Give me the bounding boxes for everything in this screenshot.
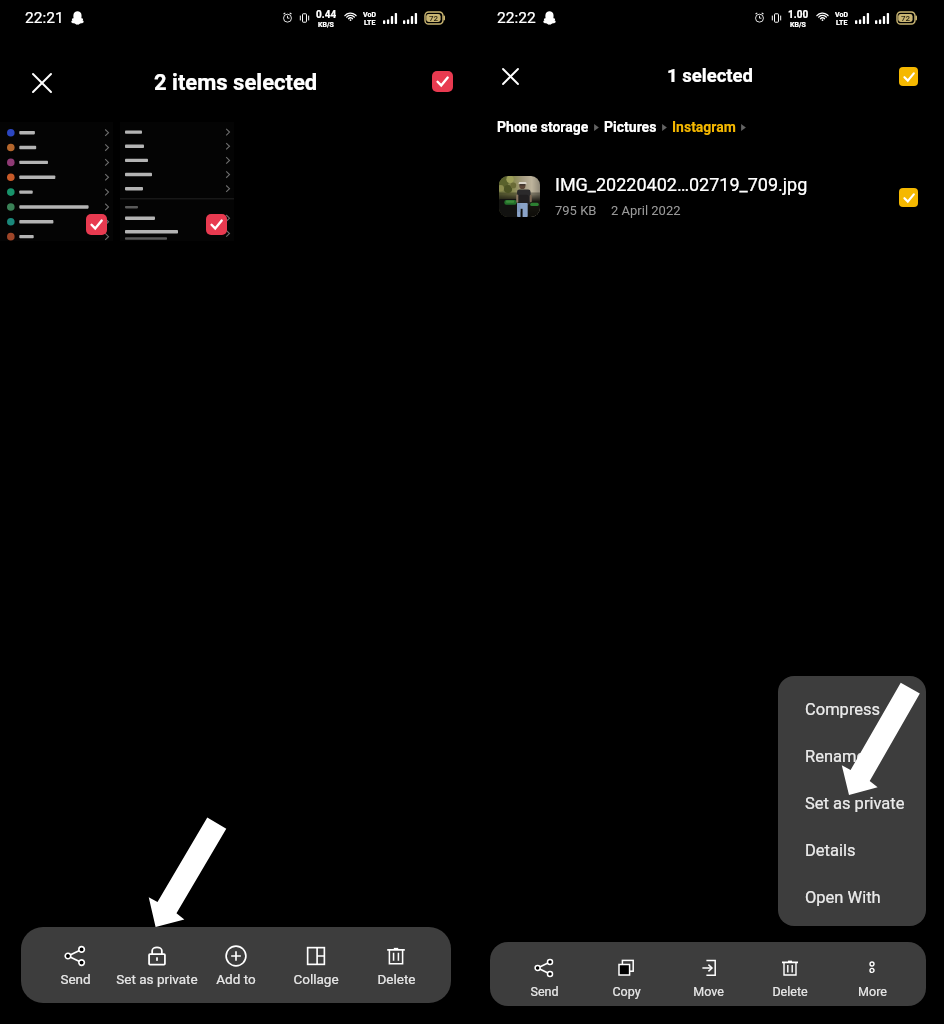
staticText: Send — [60, 971, 91, 987]
button[interactable]: Details — [778, 827, 926, 874]
staticText: Open With — [805, 888, 881, 907]
button[interactable]: Delete — [346, 927, 446, 1003]
button[interactable]: Set as private — [778, 780, 926, 827]
staticText: Set as private — [805, 794, 905, 813]
staticText: Move — [693, 984, 724, 999]
staticText: 2 April 2022 — [611, 203, 681, 218]
button[interactable]: Phone storage — [497, 119, 589, 135]
button[interactable] — [120, 122, 234, 241]
staticText: KB/S — [318, 21, 334, 29]
button[interactable]: More — [822, 942, 922, 1006]
button[interactable]: Send — [25, 927, 125, 1003]
button[interactable]: Selected — [206, 214, 227, 235]
staticText: 0.44 — [316, 9, 337, 21]
button[interactable]: IMG_20220402…02719_709.jpg — [472, 168, 944, 225]
staticText: Compress — [805, 700, 881, 719]
button[interactable]: Collage — [266, 927, 366, 1003]
button[interactable]: Add to — [186, 927, 286, 1003]
staticText: VoD — [363, 11, 376, 19]
staticText: 72 — [901, 14, 911, 23]
staticText: LTE — [364, 19, 376, 27]
button[interactable]: Instagram — [672, 119, 736, 135]
staticText: 72 — [429, 14, 439, 23]
staticText: Delete — [377, 971, 416, 987]
staticText: KB/S — [790, 21, 806, 29]
button[interactable]: Selected — [86, 214, 107, 235]
button[interactable]: Select all — [432, 71, 453, 92]
staticText: Copy — [612, 984, 641, 999]
staticText: Set as private — [116, 971, 198, 987]
button[interactable]: Compress — [778, 686, 926, 733]
button[interactable]: Close — [492, 58, 528, 94]
staticText: Add to — [216, 971, 256, 987]
button[interactable]: Rename — [778, 733, 926, 780]
staticText: Rename — [805, 747, 866, 766]
staticText: 22:21 — [25, 9, 64, 27]
button[interactable]: Delete — [740, 942, 840, 1006]
button[interactable]: Select all — [899, 67, 918, 86]
button[interactable]: Copy — [576, 942, 676, 1006]
staticText: 22:22 — [497, 9, 536, 27]
staticText: Delete — [772, 984, 808, 999]
staticText: 2 items selected — [154, 70, 318, 96]
button[interactable]: Send — [494, 942, 594, 1006]
button[interactable]: Pictures — [604, 119, 657, 135]
button[interactable]: Open With — [778, 874, 926, 921]
button[interactable]: Close — [24, 65, 60, 101]
staticText: 795 KB — [555, 203, 597, 218]
button[interactable]: Move — [658, 942, 758, 1006]
button[interactable]: Selected — [899, 188, 918, 207]
staticText: LTE — [836, 19, 848, 27]
staticText: Send — [530, 984, 559, 999]
staticText: VoD — [835, 11, 848, 19]
staticText: IMG_20220402…02719_709.jpg — [555, 174, 808, 195]
button[interactable] — [0, 122, 113, 241]
staticText: Details — [805, 841, 856, 860]
staticText: More — [858, 984, 887, 999]
staticText: Collage — [293, 971, 339, 987]
staticText: 1 selected — [667, 65, 753, 87]
button[interactable]: Set as private — [107, 927, 207, 1003]
staticText: 1.00 — [788, 9, 809, 21]
